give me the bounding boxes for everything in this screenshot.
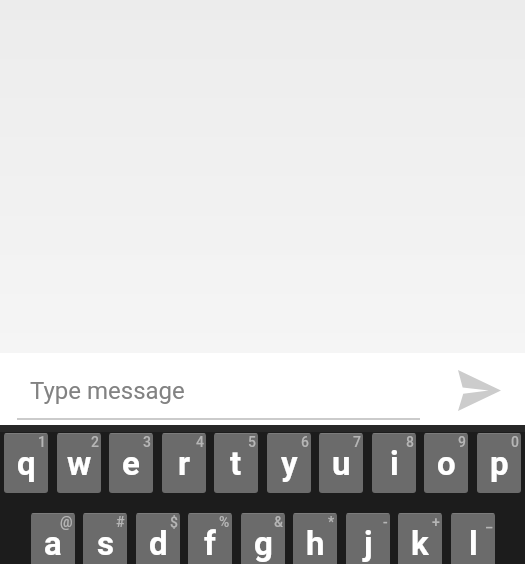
staticText: 5: [248, 434, 256, 450]
staticText: %: [219, 514, 230, 530]
staticText: r: [178, 444, 191, 483]
button[interactable]: 2: [57, 433, 101, 493]
staticText: t: [230, 444, 242, 483]
staticText: w: [67, 444, 92, 483]
staticText: *: [328, 514, 335, 530]
staticText: l: [469, 524, 478, 563]
button[interactable]: 5: [214, 433, 258, 493]
staticText: y: [281, 444, 298, 483]
button[interactable]: Type message: [8, 359, 432, 419]
staticText: a: [44, 524, 62, 563]
staticText: g: [254, 524, 273, 563]
staticText: 8: [406, 434, 414, 450]
button[interactable]: &: [241, 513, 285, 564]
staticText: 0: [511, 434, 519, 450]
staticText: 4: [196, 434, 204, 450]
staticText: q: [17, 444, 36, 483]
staticText: p: [490, 444, 509, 483]
button[interactable]: +: [398, 513, 442, 564]
staticText: @: [60, 514, 73, 530]
staticText: Type message: [30, 377, 185, 405]
staticText: d: [149, 524, 168, 563]
staticText: #: [116, 514, 125, 530]
button[interactable]: *: [293, 513, 337, 564]
button[interactable]: 1: [4, 433, 48, 493]
staticText: 6: [301, 434, 309, 450]
button[interactable]: @: [31, 513, 75, 564]
button[interactable]: 3: [109, 433, 153, 493]
button[interactable]: _: [451, 513, 495, 564]
staticText: s: [97, 524, 114, 563]
staticText: f: [204, 524, 216, 563]
staticText: e: [122, 444, 140, 483]
staticText: _: [486, 514, 493, 530]
staticText: -: [383, 514, 388, 530]
staticText: h: [306, 524, 325, 563]
button[interactable]: 8: [372, 433, 416, 493]
staticText: 9: [458, 434, 466, 450]
staticText: 1: [38, 434, 46, 450]
button[interactable]: 9: [424, 433, 468, 493]
staticText: u: [332, 444, 351, 483]
staticText: o: [437, 444, 456, 483]
button[interactable]: #: [83, 513, 127, 564]
staticText: 3: [143, 434, 151, 450]
button[interactable]: 7: [319, 433, 363, 493]
button[interactable]: 0: [477, 433, 521, 493]
staticText: $: [170, 514, 178, 530]
button[interactable]: %: [188, 513, 232, 564]
staticText: +: [432, 514, 440, 530]
staticText: k: [411, 524, 429, 563]
staticText: 2: [91, 434, 99, 450]
button[interactable]: 4: [162, 433, 206, 493]
button[interactable]: $: [136, 513, 180, 564]
button[interactable]: Send message: [447, 358, 511, 422]
button[interactable]: -: [346, 513, 390, 564]
staticText: 7: [353, 434, 361, 450]
button[interactable]: 6: [267, 433, 311, 493]
staticText: &: [274, 514, 283, 530]
staticText: j: [364, 524, 373, 563]
staticText: i: [390, 444, 399, 483]
